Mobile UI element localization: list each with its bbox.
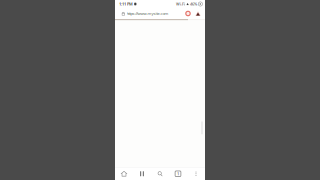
staticText: Wi-Fi xyxy=(176,1,185,7)
staticText: 46% xyxy=(190,1,197,7)
button[interactable]: Home xyxy=(115,167,133,180)
button[interactable]: Search xyxy=(151,167,169,180)
button[interactable]: More xyxy=(187,167,205,180)
staticText: https://www.mysite.com xyxy=(127,11,169,16)
button[interactable]: https://www.mysite.com xyxy=(115,8,183,19)
staticText: 1 xyxy=(177,171,179,176)
button[interactable]: Bookmarks xyxy=(133,167,151,180)
staticText: 1:11 PM xyxy=(119,1,133,7)
button[interactable]: Extension xyxy=(193,8,203,19)
button[interactable]: Tabs xyxy=(169,167,187,180)
button[interactable]: Site information xyxy=(183,8,193,19)
